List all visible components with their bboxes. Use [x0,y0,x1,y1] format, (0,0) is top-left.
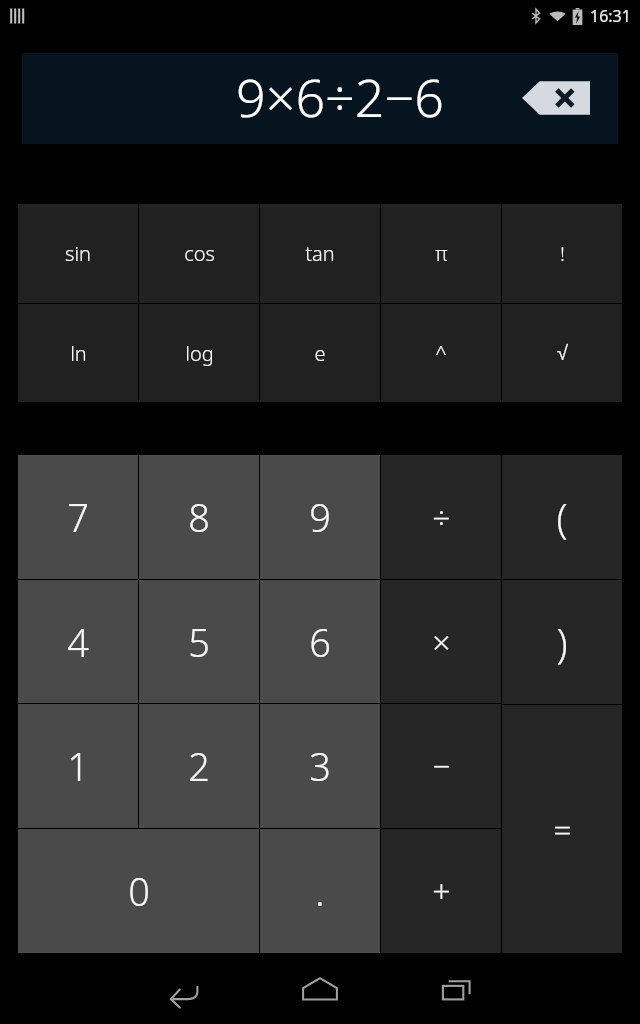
staticText: 7 [67,491,89,543]
button[interactable]: 7 [18,455,138,579]
button[interactable]: log [139,304,259,402]
button[interactable]: e [260,304,380,402]
staticText: sin [65,240,91,267]
button[interactable]: 9×6÷2−6 [22,53,618,144]
staticText: ) [556,615,568,669]
button[interactable]: ) [502,580,622,704]
staticText: tan [305,240,335,267]
button[interactable]: 2 [139,704,259,828]
staticText: 1 [67,740,89,792]
staticText: ln [70,340,87,367]
button[interactable]: 5 [139,580,259,703]
staticText: 3 [309,740,331,792]
button[interactable]: − [381,704,501,828]
staticText: ^ [435,340,447,367]
button[interactable]: × [381,580,501,703]
button[interactable]: sin [18,204,138,303]
staticText: 5 [188,616,210,668]
button[interactable]: 6 [260,580,380,703]
button[interactable]: Backspace [522,79,590,117]
staticText: √ [557,342,568,364]
staticText: ÷ [432,495,451,539]
staticText: 2 [188,740,210,792]
button[interactable]: Back [147,953,219,1024]
staticText: 9 [309,491,331,543]
button[interactable]: cos [139,204,259,303]
staticText: 8 [188,491,210,543]
button[interactable]: + [381,829,501,953]
button[interactable]: ln [18,304,138,402]
staticText: π [435,240,448,267]
staticText: log [185,340,214,367]
staticText: 16:31 [590,5,631,27]
staticText: . [315,865,325,917]
staticText: e [314,340,326,367]
staticText: = [553,807,572,851]
button[interactable]: 3 [260,704,380,828]
button[interactable]: = [502,705,622,953]
button[interactable]: 8 [139,455,259,579]
staticText: 9×6÷2−6 [236,61,444,132]
button[interactable]: π [381,204,501,303]
button[interactable]: 1 [18,704,138,828]
staticText: + [432,869,451,913]
button[interactable]: Recent apps [421,953,493,1024]
staticText: 0 [128,865,150,917]
button[interactable]: Home [284,953,356,1024]
staticText: 6 [309,616,331,668]
staticText: ( [556,490,568,544]
button[interactable]: ^ [381,304,501,402]
button[interactable]: ÷ [381,455,501,579]
button[interactable]: . [260,829,380,953]
button[interactable]: 4 [18,580,138,703]
staticText: ! [560,240,565,267]
staticText: 4 [67,616,89,668]
staticText: × [432,620,451,664]
button[interactable]: 0 [18,829,259,953]
button[interactable]: ( [502,455,622,579]
button[interactable]: tan [260,204,380,303]
button[interactable]: √ [502,304,622,402]
button[interactable]: 9 [260,455,380,579]
button[interactable]: ! [502,204,622,303]
staticText: cos [184,240,215,267]
staticText: − [432,744,451,788]
